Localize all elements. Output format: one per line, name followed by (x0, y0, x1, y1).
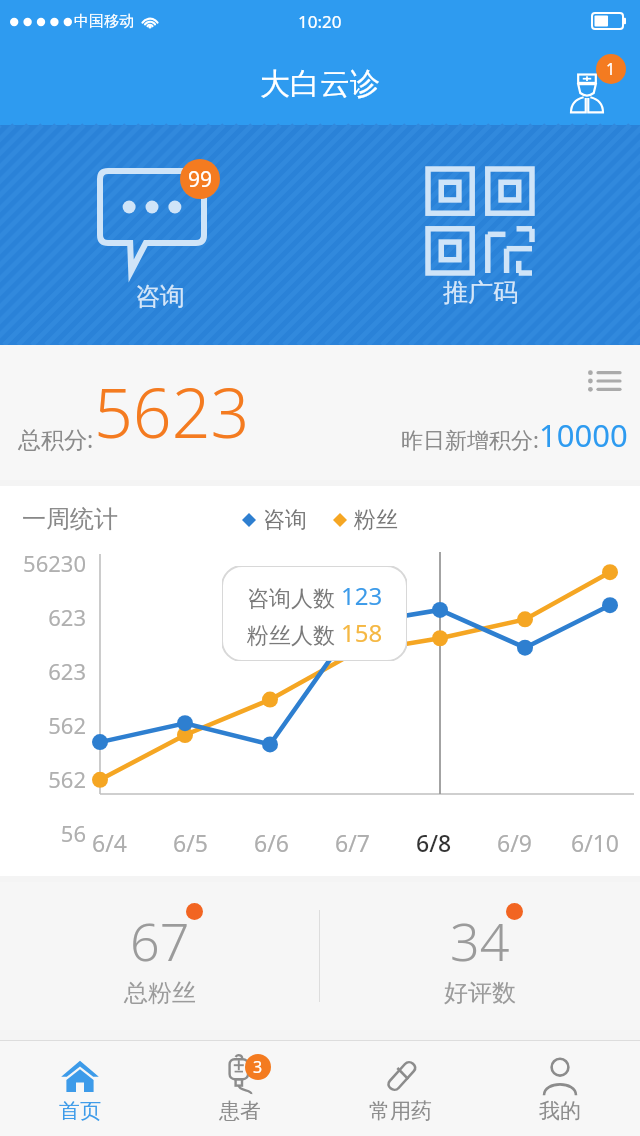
staticText: 1 (606, 58, 616, 80)
staticText: 患者 (219, 1098, 261, 1124)
staticText: 6/7 (335, 827, 370, 858)
button[interactable]: 我的 (480, 1041, 640, 1136)
staticText: 总粉丝 (124, 978, 196, 1008)
button[interactable]: Points detail list (584, 361, 624, 401)
button[interactable]: 67 (0, 882, 319, 1030)
staticText: 10:20 (298, 10, 342, 33)
staticText: 6/5 (173, 827, 208, 858)
staticText: 5623 (94, 365, 250, 458)
staticText: 粉丝 (354, 506, 398, 534)
staticText: 一周统计 (22, 504, 118, 534)
staticText: 昨日新增积分: (401, 424, 539, 454)
button[interactable]: Doctor profile (566, 54, 626, 114)
staticText: 我的 (539, 1098, 581, 1124)
button[interactable]: 常用药 (320, 1041, 480, 1136)
staticText: 623 (8, 656, 86, 686)
button[interactable]: 99 (0, 125, 320, 345)
staticText: 中国移动 (74, 12, 134, 31)
staticText: 34 (450, 905, 510, 976)
staticText: 好评数 (444, 978, 516, 1008)
staticText: 623 (8, 602, 86, 632)
staticText: 咨询 (135, 281, 185, 312)
staticText: 6/6 (254, 827, 289, 858)
staticText: 6/8 (416, 827, 452, 858)
staticText: 6/9 (497, 827, 532, 858)
staticText: 6/4 (92, 827, 127, 858)
staticText: 67 (130, 905, 190, 976)
staticText: 10000 (539, 414, 628, 456)
button[interactable]: 首页 (0, 1041, 160, 1136)
staticText: 总积分: (18, 423, 94, 454)
button[interactable]: 34 (320, 882, 640, 1030)
staticText: 99 (188, 165, 213, 194)
staticText: 大白云诊 (260, 65, 380, 103)
staticText: 首页 (59, 1098, 101, 1124)
staticText: 562 (8, 710, 86, 740)
staticText: 粉丝人数 (247, 619, 341, 649)
staticText: 562 (8, 764, 86, 794)
staticText: 123 (341, 579, 383, 612)
staticText: 推广码 (443, 277, 518, 308)
staticText: 158 (341, 616, 383, 649)
staticText: 咨询 (263, 506, 307, 534)
button[interactable]: 3 (160, 1041, 320, 1136)
staticText: 6/10 (571, 827, 620, 858)
staticText: 3 (253, 1056, 263, 1078)
button[interactable]: 推广码 (320, 125, 640, 345)
staticText: 56 (8, 818, 86, 848)
staticText: 56230 (8, 548, 86, 578)
staticText: 咨询人数 (247, 582, 341, 612)
staticText: 常用药 (369, 1098, 432, 1124)
